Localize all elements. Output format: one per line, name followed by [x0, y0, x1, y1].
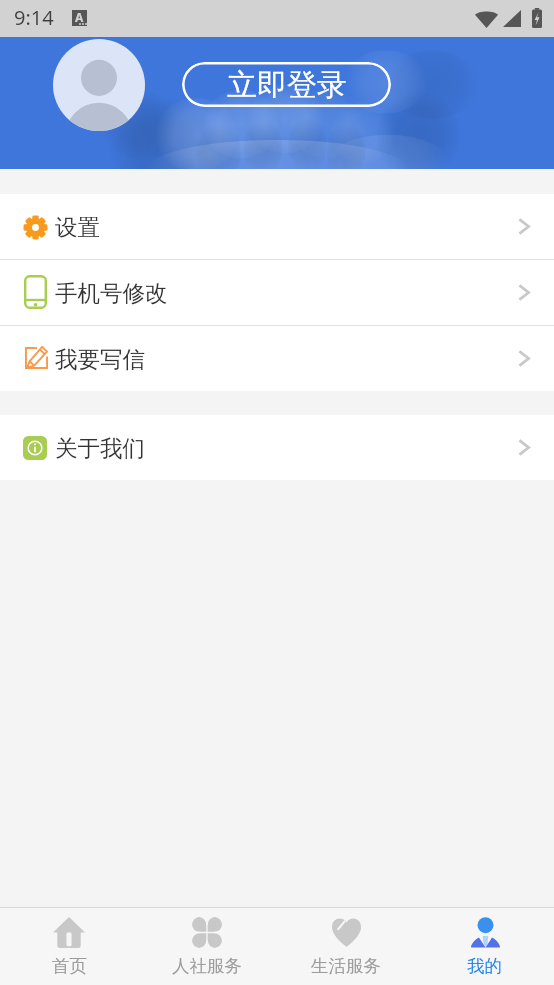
button[interactable]: 立即登录: [182, 62, 391, 107]
button[interactable]: 人社服务: [138, 907, 276, 985]
button[interactable]: 设置: [0, 194, 554, 259]
button[interactable]: 关于我们: [0, 415, 554, 480]
staticText: 立即登录: [227, 66, 347, 104]
staticText: 9:14: [14, 4, 54, 31]
staticText: 我的: [467, 955, 502, 977]
button[interactable]: 手机号修改: [0, 260, 554, 325]
button[interactable]: 首页: [0, 907, 138, 985]
staticText: 首页: [52, 955, 87, 977]
staticText: 生活服务: [311, 955, 381, 977]
staticText: 人社服务: [172, 955, 242, 977]
button[interactable]: 生活服务: [276, 907, 415, 985]
staticText: 设置: [55, 213, 100, 241]
button[interactable]: 头像: [53, 39, 145, 131]
staticText: 关于我们: [55, 434, 145, 462]
staticText: 我要写信: [55, 345, 145, 373]
staticText: 手机号修改: [55, 279, 168, 307]
button[interactable]: 我的: [415, 907, 554, 985]
staticText: A: [75, 9, 84, 25]
button[interactable]: 我要写信: [0, 326, 554, 391]
